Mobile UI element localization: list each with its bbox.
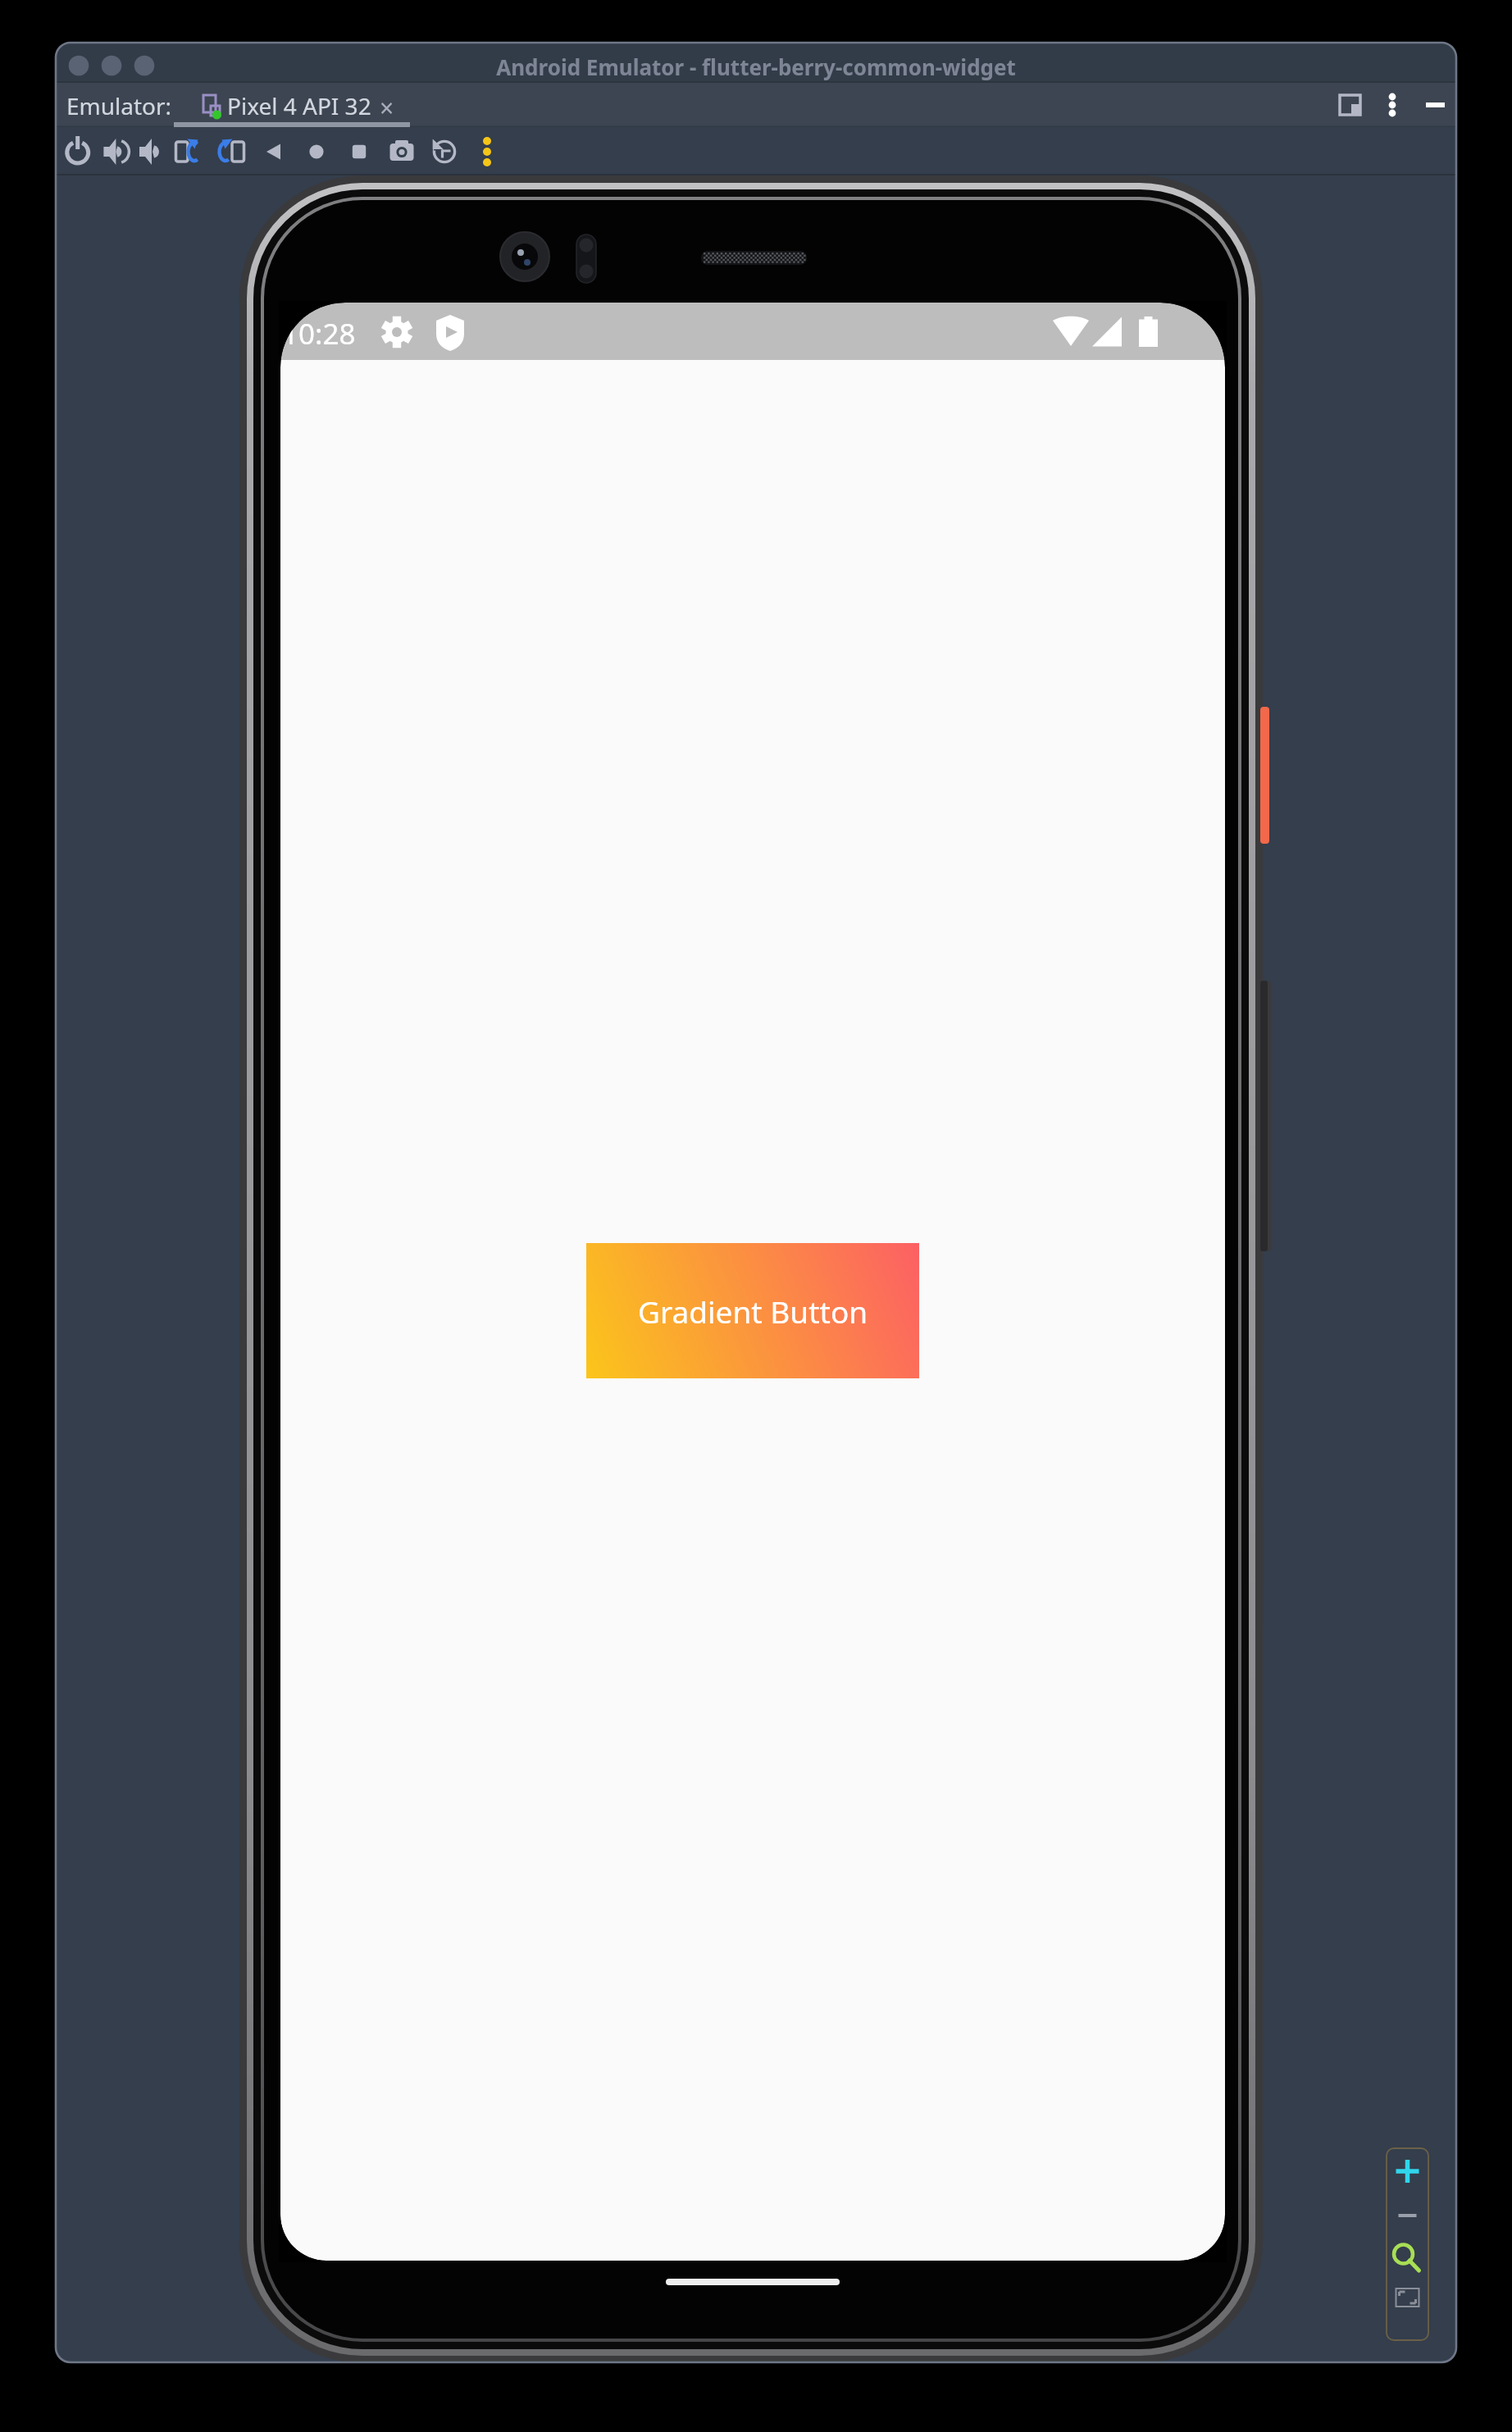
staticText: Android Emulator - flutter-berry-common-… — [56, 52, 1456, 85]
button[interactable]: Screenshot — [384, 131, 418, 172]
button[interactable]: Extended controls — [470, 131, 504, 172]
button[interactable]: Minimize window — [98, 52, 125, 79]
button[interactable]: Fit to window — [1387, 2281, 1429, 2320]
button[interactable]: Zoom in — [1387, 2153, 1429, 2194]
button[interactable]: Rotate right — [214, 131, 248, 172]
staticText: Emulator: — [66, 90, 172, 121]
staticText: × — [380, 91, 394, 119]
button[interactable]: Record screen — [426, 131, 461, 172]
button[interactable]: Close window — [65, 52, 91, 79]
button[interactable]: Toggle panel — [1333, 89, 1368, 125]
button[interactable]: Close tab — [380, 91, 408, 119]
button[interactable]: Power — [60, 131, 94, 172]
button[interactable]: Back — [256, 131, 290, 172]
button[interactable]: More options — [1376, 87, 1410, 125]
button[interactable]: Home — [299, 131, 334, 172]
button[interactable]: Minimize — [1417, 87, 1453, 125]
button[interactable]: Overview — [341, 131, 376, 172]
staticText: Gradient Button — [638, 1291, 868, 1332]
button[interactable]: Rotate left — [171, 131, 206, 172]
button[interactable]: Zoom window — [132, 52, 158, 79]
button[interactable]: Volume down — [131, 131, 166, 172]
button[interactable]: Zoom out — [1387, 2194, 1429, 2235]
staticText: 10:28 — [282, 314, 356, 353]
button[interactable]: Volume up — [96, 131, 130, 172]
button[interactable]: Pixel 4 API 32 — [169, 85, 418, 128]
button[interactable]: Zoom to actual size — [1387, 2235, 1429, 2281]
button[interactable]: Gradient Button — [586, 1243, 919, 1378]
staticText: Pixel 4 API 32 — [227, 90, 371, 121]
